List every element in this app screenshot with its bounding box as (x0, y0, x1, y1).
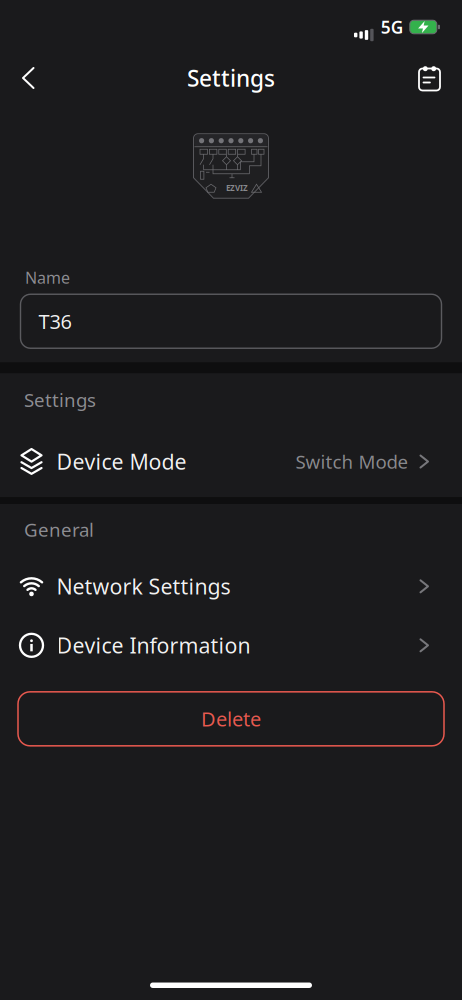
staticText: 5G (381, 15, 404, 38)
staticText: T36 (38, 308, 71, 335)
staticText: Device Information (56, 631, 250, 659)
button[interactable]: Notes (413, 59, 446, 96)
staticText: Device Mode (56, 447, 186, 476)
staticText: General (24, 517, 94, 542)
staticText: Network Settings (56, 572, 230, 600)
button[interactable]: Delete (18, 692, 444, 746)
staticText: Delete (201, 705, 261, 732)
button[interactable]: Back (15, 60, 41, 96)
staticText: Settings (187, 63, 275, 93)
staticText: Switch Mode (295, 449, 408, 474)
button[interactable]: Device Information (0, 616, 462, 675)
button[interactable]: Network Settings (0, 557, 462, 616)
staticText: Name (25, 267, 70, 288)
button[interactable]: Device Mode (0, 431, 462, 491)
button[interactable]: T36 (20, 294, 441, 348)
staticText: EZVIZ (226, 183, 248, 193)
staticText: Settings (24, 387, 96, 412)
